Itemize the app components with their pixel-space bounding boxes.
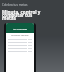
staticText: Resumen semanal: [6, 34, 34, 37]
staticText: Celebra tus metas: [2, 3, 28, 7]
staticText: Minuta, control y computar tus metas: [2, 9, 41, 21]
staticText: Mi actividad: [13, 27, 28, 30]
